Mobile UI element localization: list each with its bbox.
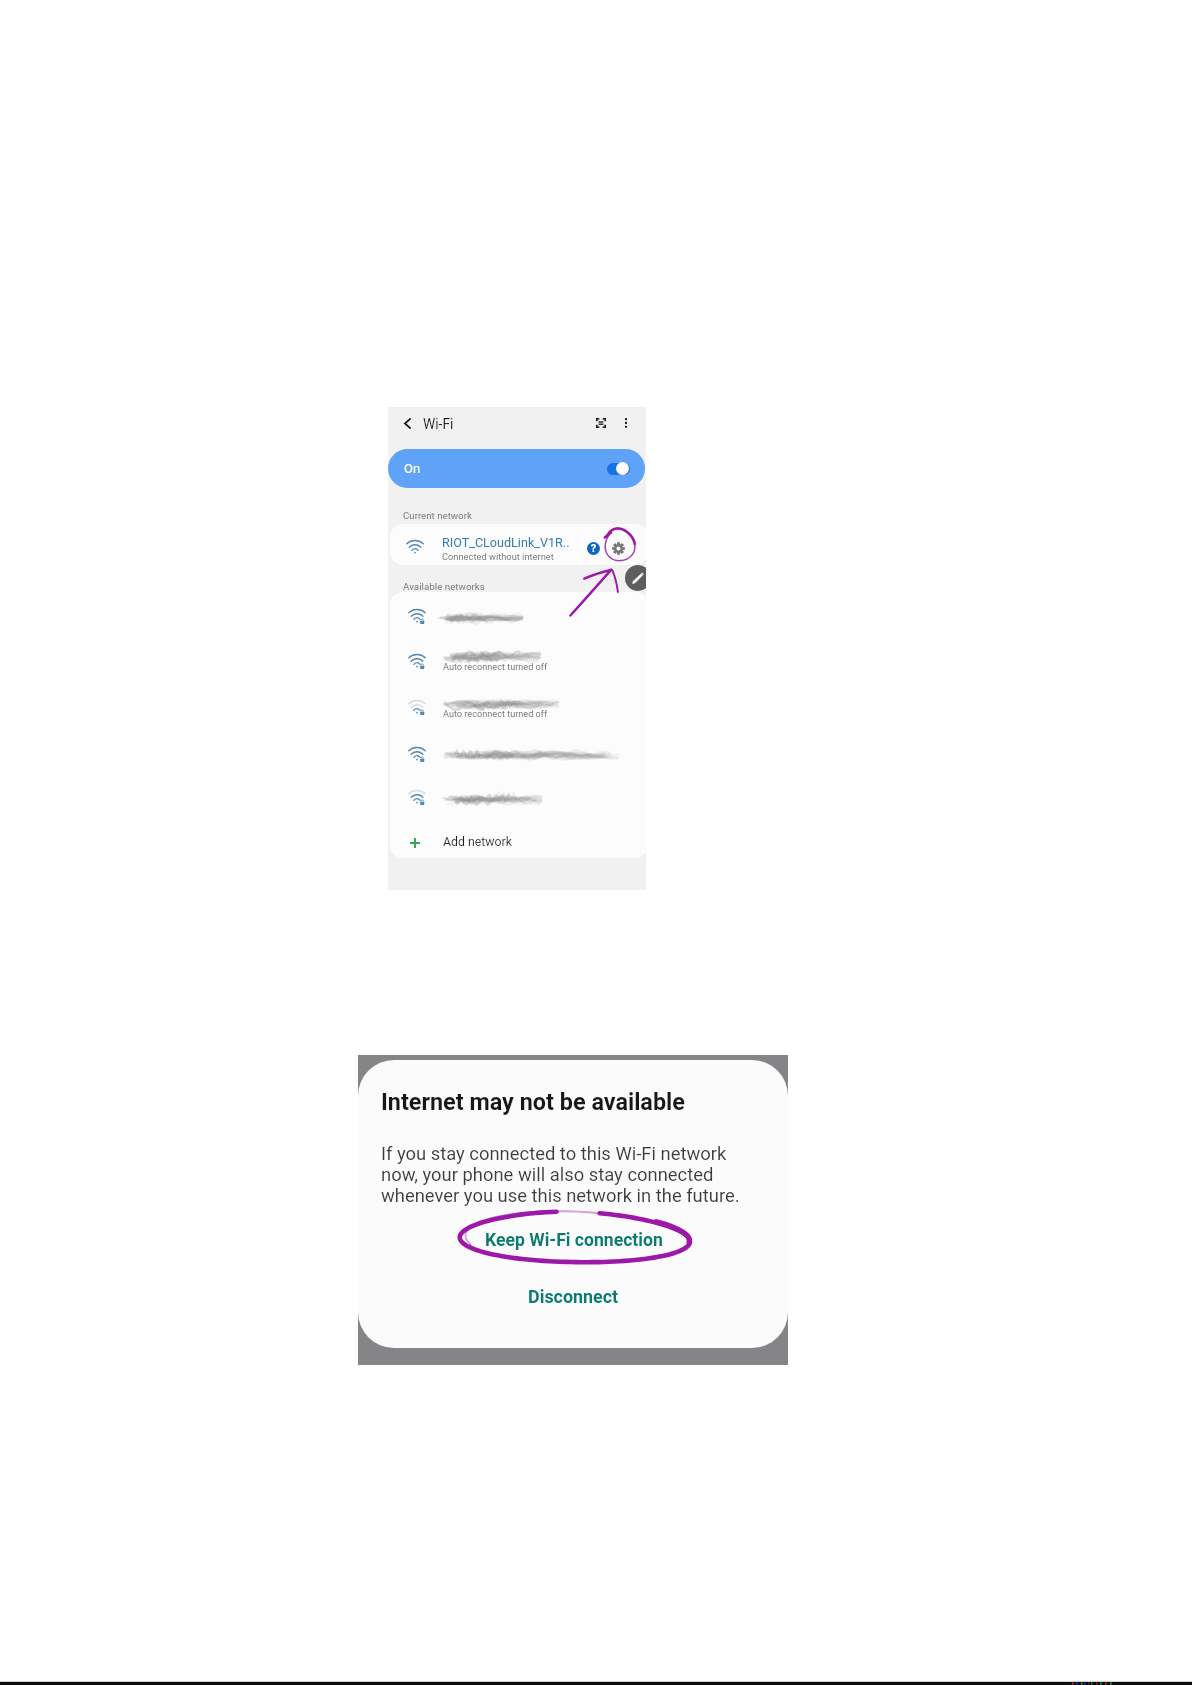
staticText: Auto reconnect turned off xyxy=(443,662,548,673)
staticText: Keep Wi-Fi connection xyxy=(485,1230,663,1251)
staticText: Available networks xyxy=(403,581,485,592)
staticText: On xyxy=(404,461,421,476)
button[interactable]: Network settings xyxy=(608,538,629,559)
button[interactable]: Edit xyxy=(625,565,646,591)
staticText: Disconnect xyxy=(528,1286,619,1307)
staticText: Wi-Fi xyxy=(423,416,454,432)
button[interactable] xyxy=(390,824,646,858)
button[interactable]: Keep Wi-Fi connection xyxy=(359,1227,788,1253)
staticText: Connected without internet xyxy=(442,551,554,562)
button[interactable] xyxy=(390,641,646,683)
button[interactable] xyxy=(390,734,646,776)
button[interactable] xyxy=(390,596,646,638)
button[interactable]: On xyxy=(388,449,645,488)
staticText: Add network xyxy=(443,835,512,849)
button[interactable]: RIOT_CLoudLink_V1R.. xyxy=(390,524,646,565)
staticText: ? xyxy=(591,543,596,555)
button[interactable]: Navigate up xyxy=(396,412,418,434)
staticText: RIOT_CLoudLink_V1R.. xyxy=(442,535,570,550)
button[interactable]: More options xyxy=(614,411,638,435)
button[interactable] xyxy=(390,687,646,729)
button[interactable] xyxy=(390,777,646,819)
staticText: Current network xyxy=(403,510,472,521)
staticText: Auto reconnect turned off xyxy=(443,709,548,720)
staticText: If you stay connected to this Wi-Fi netw… xyxy=(381,1143,740,1206)
staticText: Internet may not be available xyxy=(381,1088,685,1115)
button[interactable]: Disconnect xyxy=(358,1283,788,1309)
button[interactable]: Scan QR code xyxy=(589,411,613,435)
button[interactable]: Help xyxy=(587,542,600,555)
